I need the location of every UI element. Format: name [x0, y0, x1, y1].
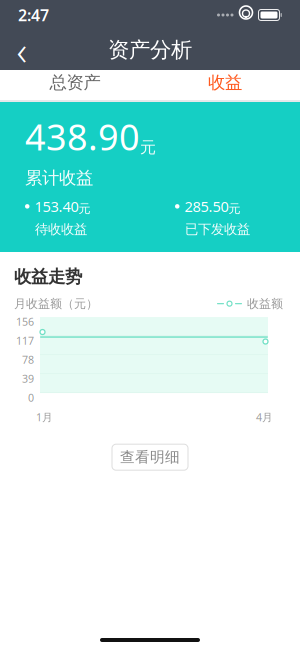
staticText: 78 [22, 352, 34, 367]
staticText: 2:47 [18, 4, 49, 26]
button[interactable]: 查看明细 [112, 444, 188, 470]
button[interactable]: 收益 [150, 70, 300, 100]
staticText: 元 [140, 138, 156, 157]
staticText: 查看明细 [120, 448, 180, 466]
staticText: 元 [228, 201, 240, 216]
staticText: 0 [28, 390, 34, 405]
staticText: 收益 [208, 72, 242, 93]
staticText: 收益额 [247, 296, 283, 311]
button[interactable]: 总资产 [0, 70, 150, 100]
staticText: 待收收益 [35, 221, 87, 237]
button[interactable]: Back [0, 30, 44, 70]
staticText: 月收益额（元） [14, 296, 98, 311]
staticText: 39 [22, 371, 34, 386]
staticText: 153.40 [34, 197, 78, 216]
staticText: 1月 [36, 410, 53, 424]
staticText: 156 [16, 314, 34, 329]
staticText: 117 [16, 333, 34, 348]
staticText: 元 [78, 201, 90, 216]
staticText: 已下发收益 [185, 221, 250, 237]
staticText: 438.90 [25, 112, 140, 160]
staticText: 累计收益 [25, 167, 93, 189]
staticText: ‹ [16, 23, 27, 76]
staticText: 资产分析 [108, 37, 192, 63]
staticText: 总资产 [49, 72, 100, 93]
staticText: 4月 [256, 410, 273, 424]
staticText: 285.50 [184, 197, 228, 216]
staticText: 收益走势 [14, 266, 82, 287]
